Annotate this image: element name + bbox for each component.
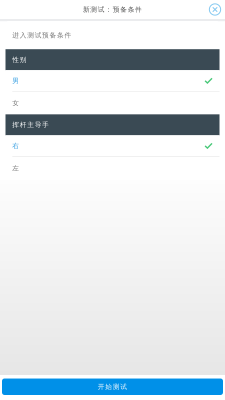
staticText: 女 — [12, 99, 19, 107]
button[interactable]: 男 — [5, 70, 219, 91]
staticText: 进入测试预备条件 — [12, 31, 71, 39]
staticText: 右 — [12, 142, 19, 150]
staticText: 新测试：预备条件 — [83, 5, 142, 14]
button[interactable]: Close — [205, 0, 224, 19]
button[interactable]: 女 — [5, 92, 219, 114]
button[interactable]: 右 — [5, 135, 219, 156]
staticText: 左 — [12, 164, 19, 172]
staticText: 男 — [12, 77, 19, 85]
staticText: 挥杆主导手 — [12, 121, 49, 129]
staticText: 开始测试 — [98, 383, 127, 391]
button[interactable]: 开始测试 — [2, 378, 223, 395]
button[interactable]: 左 — [5, 157, 219, 179]
staticText: 性别 — [12, 56, 27, 64]
